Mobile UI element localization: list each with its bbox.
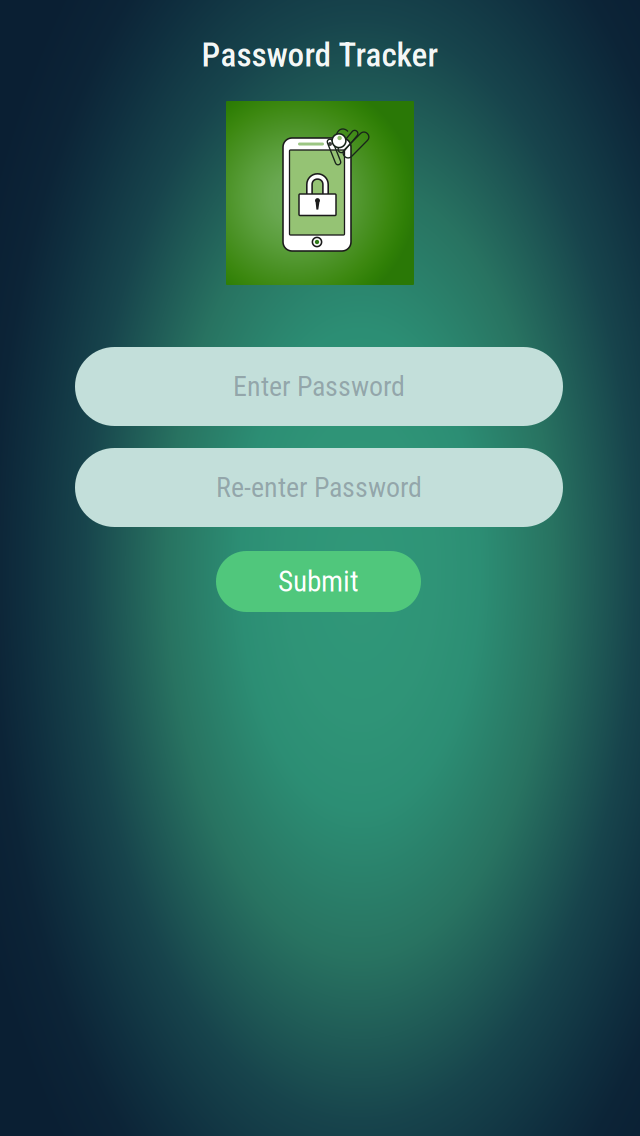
staticText: Enter Password — [233, 370, 405, 403]
staticText: Password Tracker — [201, 35, 438, 75]
staticText: Re-enter Password — [216, 471, 422, 504]
staticText: Submit — [278, 564, 359, 599]
button[interactable]: Submit — [216, 551, 421, 612]
